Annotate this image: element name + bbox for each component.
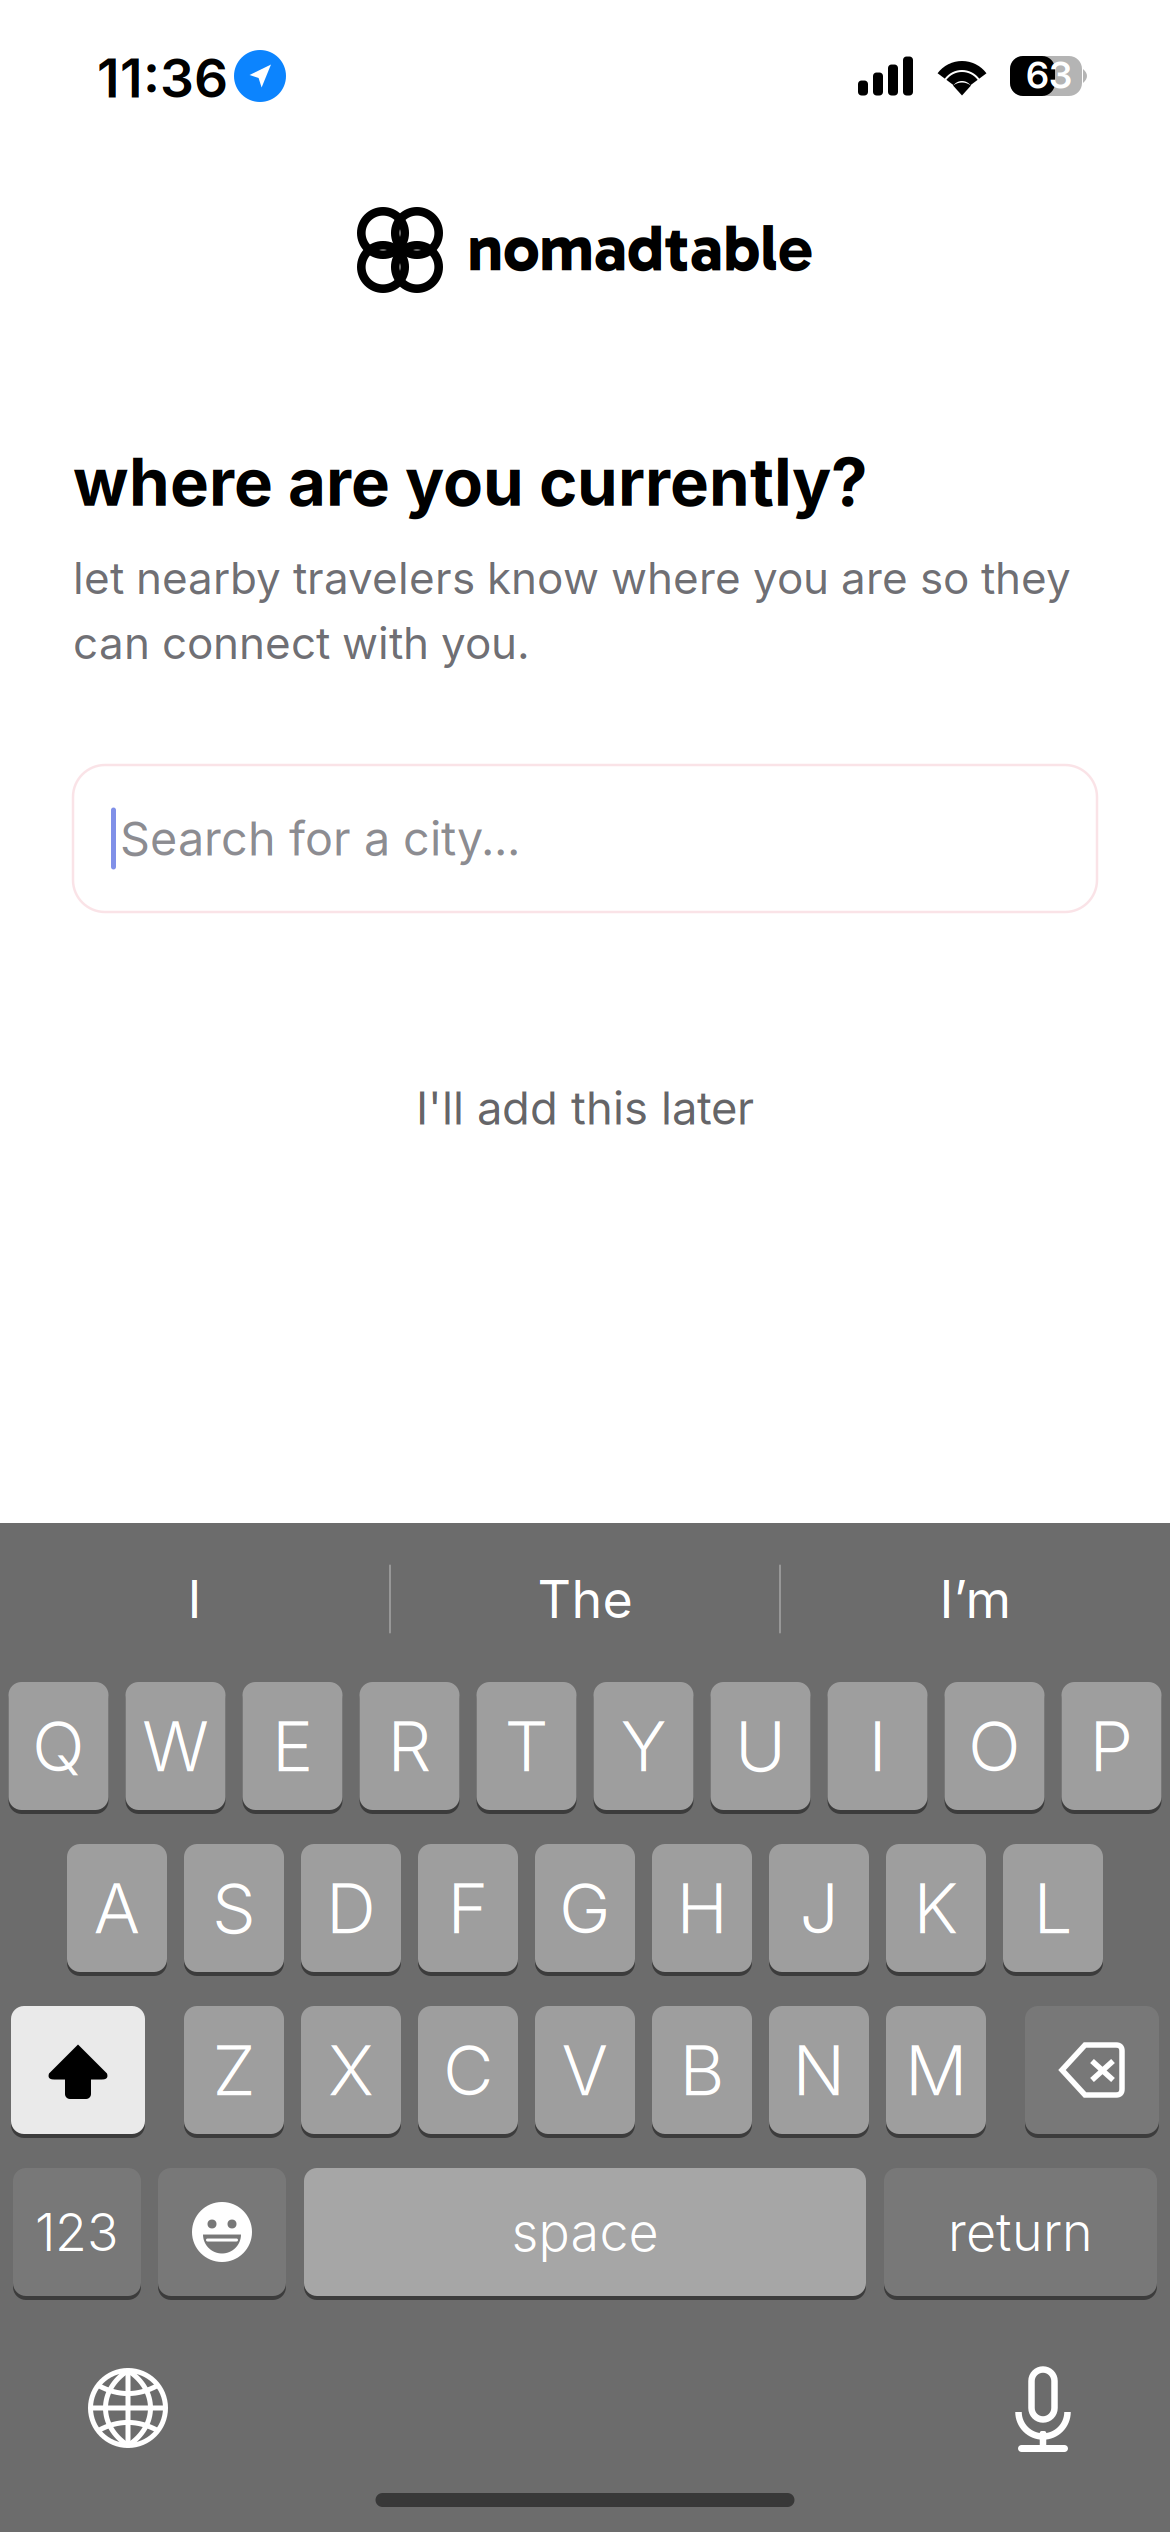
- staticText: R: [387, 1704, 431, 1788]
- button[interactable]: 123: [13, 2168, 141, 2296]
- button[interactable]: Q: [8, 1682, 108, 1810]
- staticText: U: [735, 1704, 786, 1788]
- button[interactable]: N: [769, 2006, 869, 2134]
- staticText: N: [792, 2028, 845, 2112]
- button[interactable]: E: [242, 1682, 342, 1810]
- staticText: I: [187, 1567, 201, 1630]
- staticText: L: [1033, 1866, 1072, 1950]
- button[interactable]: Next keyboard: [88, 2368, 168, 2450]
- button[interactable]: space: [304, 2168, 866, 2296]
- button[interactable]: Y: [593, 1682, 693, 1810]
- staticText: can connect with you.: [73, 616, 530, 670]
- staticText: nomadtable: [467, 209, 813, 287]
- staticText: The: [537, 1567, 632, 1630]
- staticText: S: [212, 1866, 256, 1950]
- staticText: I'll add this later: [416, 1081, 754, 1135]
- staticText: P: [1089, 1704, 1133, 1788]
- staticText: H: [676, 1866, 727, 1950]
- button[interactable]: I’m: [781, 1540, 1170, 1658]
- button[interactable]: return: [884, 2168, 1157, 2296]
- staticText: C: [443, 2028, 493, 2112]
- staticText: V: [561, 2028, 608, 2112]
- button[interactable]: The: [391, 1540, 779, 1658]
- button[interactable]: Delete: [1025, 2006, 1159, 2134]
- staticText: G: [559, 1866, 611, 1950]
- staticText: Y: [620, 1704, 666, 1788]
- staticText: B: [679, 2028, 724, 2112]
- button[interactable]: L: [1003, 1844, 1103, 1972]
- staticText: 11:36: [97, 46, 228, 110]
- staticText: D: [326, 1866, 376, 1950]
- staticText: T: [504, 1704, 548, 1788]
- staticText: E: [272, 1704, 313, 1788]
- button[interactable]: V: [535, 2006, 635, 2134]
- button[interactable]: O: [944, 1682, 1044, 1810]
- button[interactable]: Emoji: [158, 2168, 286, 2296]
- button[interactable]: U: [710, 1682, 810, 1810]
- button[interactable]: I: [0, 1540, 389, 1658]
- button[interactable]: D: [301, 1844, 401, 1972]
- button[interactable]: G: [535, 1844, 635, 1972]
- staticText: A: [93, 1866, 140, 1950]
- button[interactable]: K: [886, 1844, 986, 1972]
- button[interactable]: T: [476, 1682, 576, 1810]
- staticText: O: [968, 1704, 1021, 1788]
- button[interactable]: J: [769, 1844, 869, 1972]
- staticText: W: [142, 1704, 209, 1788]
- staticText: Z: [212, 2028, 255, 2112]
- button[interactable]: H: [652, 1844, 752, 1972]
- button[interactable]: P: [1061, 1682, 1161, 1810]
- staticText: J: [799, 1866, 838, 1950]
- button[interactable]: S: [184, 1844, 284, 1972]
- button[interactable]: Shift: [11, 2006, 145, 2134]
- button[interactable]: M: [886, 2006, 986, 2134]
- staticText: I: [868, 1704, 886, 1788]
- staticText: Q: [32, 1704, 85, 1788]
- staticText: return: [948, 2200, 1093, 2263]
- staticText: space: [511, 2200, 658, 2263]
- button[interactable]: A: [67, 1844, 167, 1972]
- button[interactable]: Z: [184, 2006, 284, 2134]
- button[interactable]: I: [827, 1682, 927, 1810]
- button[interactable]: R: [359, 1682, 459, 1810]
- button[interactable]: F: [418, 1844, 518, 1972]
- staticText: 123: [35, 2200, 119, 2263]
- staticText: M: [905, 2028, 967, 2112]
- staticText: where are you currently?: [73, 442, 868, 521]
- button[interactable]: W: [125, 1682, 225, 1810]
- staticText: F: [447, 1866, 488, 1950]
- button[interactable]: X: [301, 2006, 401, 2134]
- button[interactable]: B: [652, 2006, 752, 2134]
- button[interactable]: C: [418, 2006, 518, 2134]
- button[interactable]: Dictation: [1015, 2366, 1071, 2452]
- staticText: 63: [1026, 52, 1072, 98]
- staticText: Search for a city...: [120, 810, 520, 867]
- button[interactable]: I'll add this later: [0, 1078, 1170, 1138]
- staticText: let nearby travelers know where you are …: [73, 551, 1071, 605]
- staticText: I’m: [939, 1567, 1011, 1630]
- staticText: K: [913, 1866, 958, 1950]
- staticText: X: [328, 2028, 374, 2112]
